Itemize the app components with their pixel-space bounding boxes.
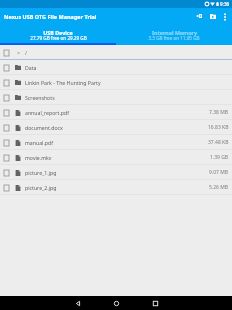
staticText: 5.26 MB — [209, 184, 229, 191]
staticText: movie.mkv — [25, 154, 52, 161]
button[interactable]: Eject device — [192, 9, 206, 23]
button[interactable]: Data — [0, 60, 232, 75]
staticText: 9.07 MB — [209, 169, 229, 176]
button[interactable]: Linkin Park - The Hunting Party — [0, 75, 232, 90]
button[interactable]: movie.mkv — [0, 150, 232, 165]
button[interactable]: annual_report.pdf — [0, 105, 232, 120]
button[interactable]: Internal Memory — [116, 24, 232, 45]
staticText: picture_1.jpg — [25, 169, 57, 176]
button[interactable]: Screenshots — [0, 90, 232, 105]
button[interactable]: Media folder — [206, 10, 219, 23]
button[interactable]: document.docx — [0, 120, 232, 135]
staticText: 27.79 GB free on 29.29 GB — [30, 35, 87, 41]
staticText: 37.48 KB — [208, 139, 229, 146]
staticText: Nexus USB OTG File Manager Trial — [4, 13, 97, 20]
staticText: annual_report.pdf — [25, 109, 69, 116]
staticText: 9:36 — [220, 1, 230, 7]
staticText: 1.39 GB — [210, 154, 229, 161]
staticText: 7.38 MB — [209, 109, 229, 116]
staticText: document.docx — [25, 124, 63, 131]
button[interactable]: Back — [67, 296, 89, 310]
button[interactable]: USB Device — [0, 24, 116, 45]
staticText: manual.pdf — [25, 139, 53, 146]
staticText: > — [17, 49, 21, 56]
staticText: 3.3 GB free on 11.05 GB — [148, 35, 200, 41]
staticText: USB Device — [43, 29, 73, 36]
staticText: Linkin Park - The Hunting Party — [25, 79, 101, 86]
button[interactable]: More options — [219, 11, 230, 22]
button[interactable]: picture_1.jpg — [0, 165, 232, 180]
staticText: Data — [25, 64, 37, 71]
staticText: / — [25, 49, 28, 56]
button[interactable]: Recent apps — [144, 296, 166, 310]
button[interactable]: Home — [105, 296, 127, 310]
staticText: Internal Memory — [152, 29, 197, 36]
staticText: 16.83 KB — [208, 124, 229, 131]
staticText: Screenshots — [25, 94, 55, 101]
staticText: picture_2.jpg — [25, 184, 57, 191]
button[interactable]: > — [0, 45, 232, 60]
button[interactable]: manual.pdf — [0, 135, 232, 150]
button[interactable]: picture_2.jpg — [0, 180, 232, 195]
